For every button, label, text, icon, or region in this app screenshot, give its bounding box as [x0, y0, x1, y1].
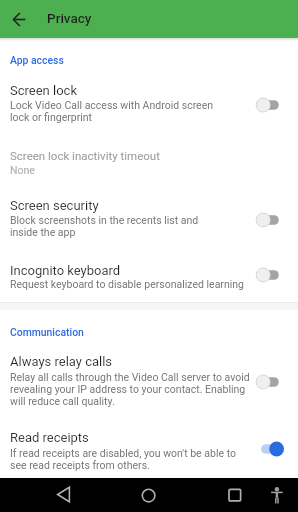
- button[interactable]: [255, 97, 284, 113]
- button[interactable]: [262, 478, 292, 512]
- staticText: App access: [10, 54, 64, 66]
- staticText: Communication: [10, 326, 84, 338]
- button[interactable]: [255, 374, 284, 390]
- staticText: Request keyboard to disable personalized…: [10, 278, 244, 290]
- button[interactable]: [214, 478, 254, 512]
- staticText: Screen lock: [10, 83, 77, 98]
- staticText: If read receipts are disabled, you won't…: [10, 447, 236, 471]
- staticText: Privacy: [47, 10, 92, 26]
- button[interactable]: [255, 441, 284, 457]
- button[interactable]: [43, 478, 83, 512]
- button[interactable]: Incognito keyboard: [0, 252, 298, 298]
- staticText: Relay all calls through the Video Call s…: [10, 371, 250, 407]
- button[interactable]: Always relay calls: [0, 344, 298, 410]
- button[interactable]: Screen lock inactivity timeout: [0, 140, 298, 186]
- staticText: Read receipts: [10, 430, 89, 445]
- staticText: None: [10, 164, 35, 176]
- staticText: Incognito keyboard: [10, 263, 121, 278]
- button[interactable]: Read receipts: [0, 420, 298, 476]
- staticText: Lock Video Call access with Android scre…: [10, 99, 214, 123]
- staticText: Screen lock inactivity timeout: [10, 149, 160, 162]
- button[interactable]: Screen security: [0, 188, 298, 246]
- button[interactable]: [255, 212, 284, 228]
- button[interactable]: [255, 267, 284, 283]
- button[interactable]: [128, 478, 168, 512]
- button[interactable]: [2, 1, 38, 37]
- button[interactable]: Screen lock: [0, 72, 298, 138]
- staticText: Screen security: [10, 198, 99, 213]
- staticText: Always relay calls: [10, 354, 113, 369]
- staticText: Block screenshots in the recents list an…: [10, 214, 199, 238]
